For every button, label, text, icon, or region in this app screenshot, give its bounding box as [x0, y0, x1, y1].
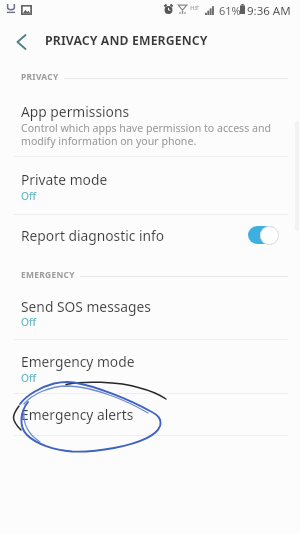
staticText: PRIVACY AND EMERGENCY: [45, 32, 208, 49]
staticText: modify information on your phone.: [21, 134, 197, 148]
button[interactable]: [0, 215, 300, 272]
staticText: Report diagnostic info: [21, 226, 165, 245]
button[interactable]: [0, 157, 300, 214]
staticText: Emergency mode: [21, 352, 135, 371]
button[interactable]: [0, 94, 300, 156]
button[interactable]: [0, 394, 300, 435]
staticText: Emergency alerts: [21, 405, 134, 424]
button[interactable]: [0, 282, 300, 339]
button[interactable]: [0, 340, 300, 393]
staticText: +: [196, 3, 200, 11]
button[interactable]: Report diagnostic info toggle: [240, 219, 286, 251]
staticText: Off: [21, 315, 36, 329]
staticText: PRIVACY: [21, 71, 59, 82]
staticText: Control which apps have permission to ac…: [21, 121, 272, 135]
staticText: 61%: [219, 3, 241, 18]
button[interactable]: Back: [4, 25, 38, 59]
staticText: HS: [190, 4, 198, 12]
staticText: EMERGENCY: [21, 269, 75, 280]
staticText: Send SOS messages: [21, 297, 151, 316]
staticText: Off: [21, 371, 36, 385]
staticText: Private mode: [21, 170, 108, 189]
staticText: Off: [21, 189, 36, 203]
staticText: 9:36 AM: [247, 3, 291, 19]
staticText: App permissions: [21, 102, 130, 121]
